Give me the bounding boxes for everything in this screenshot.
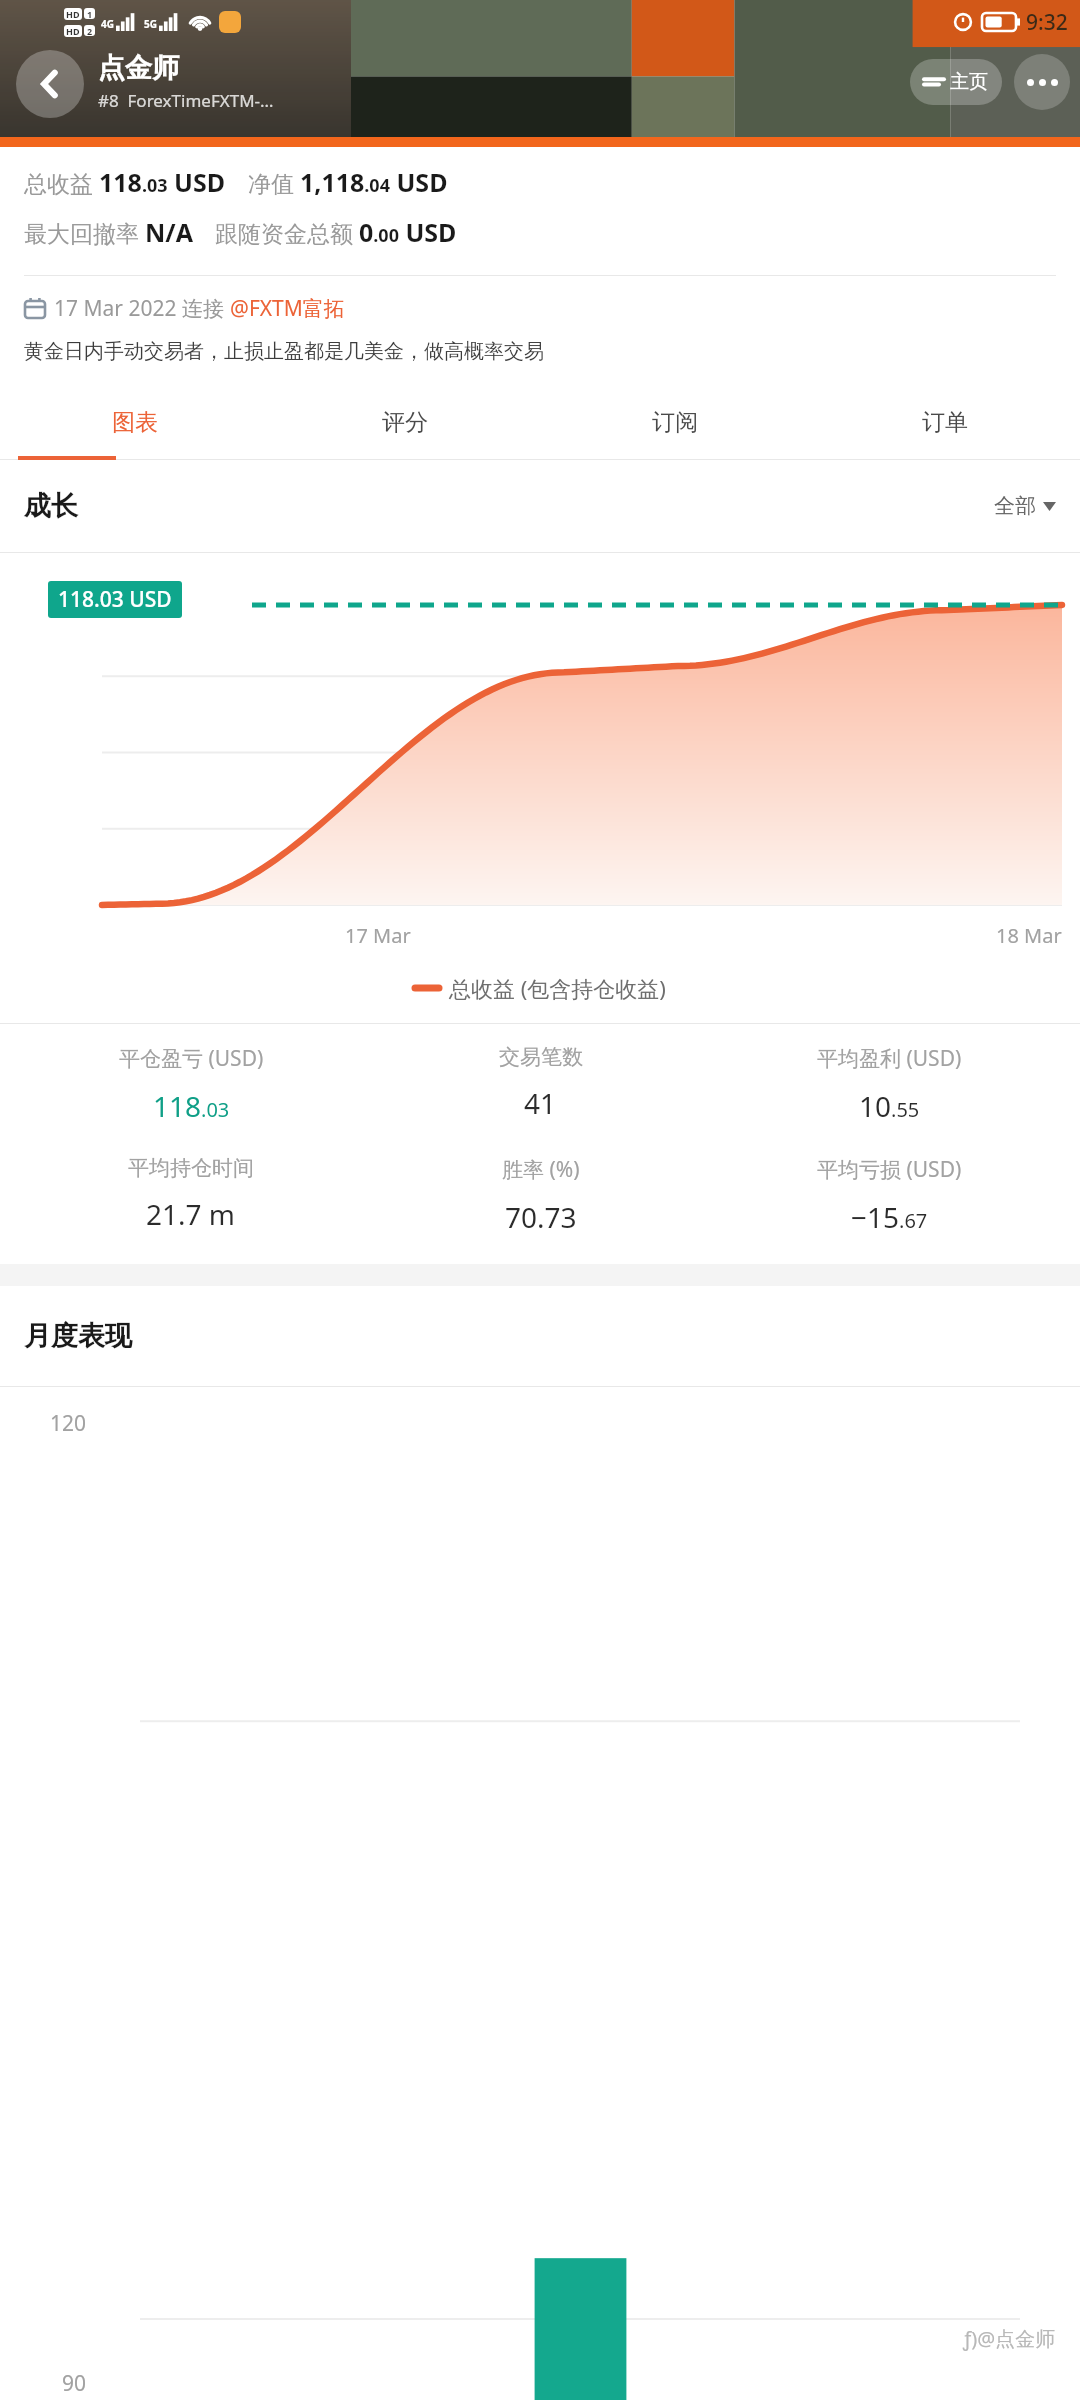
staticText: 9:32: [1026, 8, 1068, 37]
button[interactable]: More options: [1014, 54, 1070, 110]
staticText: 交易笔数: [499, 1044, 583, 1070]
staticText: 70.73: [505, 1198, 577, 1236]
staticText: 17 Mar: [345, 922, 411, 949]
staticText: ƒ)@点金师: [963, 2325, 1056, 2352]
staticText: 41: [524, 1084, 557, 1122]
staticText: 胜率 (%): [502, 1155, 580, 1184]
button[interactable]: 交易笔数: [366, 1044, 715, 1122]
button[interactable]: 平均盈利 (USD): [715, 1044, 1064, 1125]
staticText: 点金师: [98, 51, 179, 85]
staticText: 4G: [101, 17, 114, 31]
staticText: 平均盈利 (USD): [817, 1044, 962, 1073]
staticText: 主页: [950, 70, 988, 94]
staticText: 黄金日内手动交易者，止损止盈都是几美金，做高概率交易: [24, 339, 544, 364]
staticText: 月度表现: [24, 1319, 132, 1353]
staticText: 10.55: [859, 1087, 920, 1125]
staticText: 118.03: [153, 1087, 230, 1125]
button[interactable]: 全部: [994, 493, 1056, 519]
button[interactable]: 订单: [810, 384, 1080, 460]
staticText: HD: [66, 25, 80, 37]
staticText: 平仓盈亏 (USD): [119, 1044, 264, 1073]
staticText: 118.03 USD: [58, 585, 172, 614]
staticText: #8 ForexTimeFXTM-…: [98, 89, 274, 112]
button[interactable]: 平均亏损 (USD): [715, 1155, 1064, 1236]
staticText: 平均亏损 (USD): [817, 1155, 962, 1184]
staticText: −15.67: [851, 1198, 928, 1236]
staticText: 90: [62, 2369, 87, 2398]
staticText: 17 Mar 2022 连接: [54, 294, 230, 323]
button[interactable]: 图表: [0, 384, 270, 460]
button[interactable]: 平均持仓时间: [16, 1155, 366, 1233]
button[interactable]: 平仓盈亏 (USD): [16, 1044, 366, 1125]
button[interactable]: 胜率 (%): [366, 1155, 715, 1236]
button[interactable]: 订阅: [540, 384, 810, 460]
button[interactable]: Back: [16, 50, 84, 118]
button[interactable]: 评分: [270, 384, 540, 460]
staticText: 2: [87, 25, 93, 36]
staticText: HD: [66, 8, 80, 20]
staticText: 1: [87, 8, 93, 19]
staticText: 120: [50, 1409, 87, 1438]
staticText: 跟随资金总额 0.00 USD: [215, 215, 457, 249]
staticText: 订阅: [652, 408, 698, 437]
staticText: 总收益 118.03 USD: [24, 165, 226, 199]
staticText: 平均持仓时间: [128, 1155, 254, 1181]
staticText: 净值 1,118.04 USD: [248, 165, 448, 199]
staticText: 21.7 m: [146, 1195, 236, 1233]
staticText: 5G: [144, 17, 157, 31]
staticText: 图表: [112, 408, 158, 437]
staticText: 18 Mar: [996, 922, 1062, 949]
button[interactable]: 主页: [910, 59, 1002, 105]
button[interactable]: @FXTM富拓: [230, 294, 345, 323]
staticText: 订单: [922, 408, 968, 437]
staticText: 成长: [24, 489, 78, 523]
staticText: 最大回撤率 N/A: [24, 215, 193, 249]
staticText: 评分: [382, 408, 428, 437]
staticText: @FXTM富拓: [230, 294, 345, 323]
staticText: 全部: [994, 493, 1036, 519]
staticText: 总收益 (包含持仓收益): [449, 973, 666, 1003]
